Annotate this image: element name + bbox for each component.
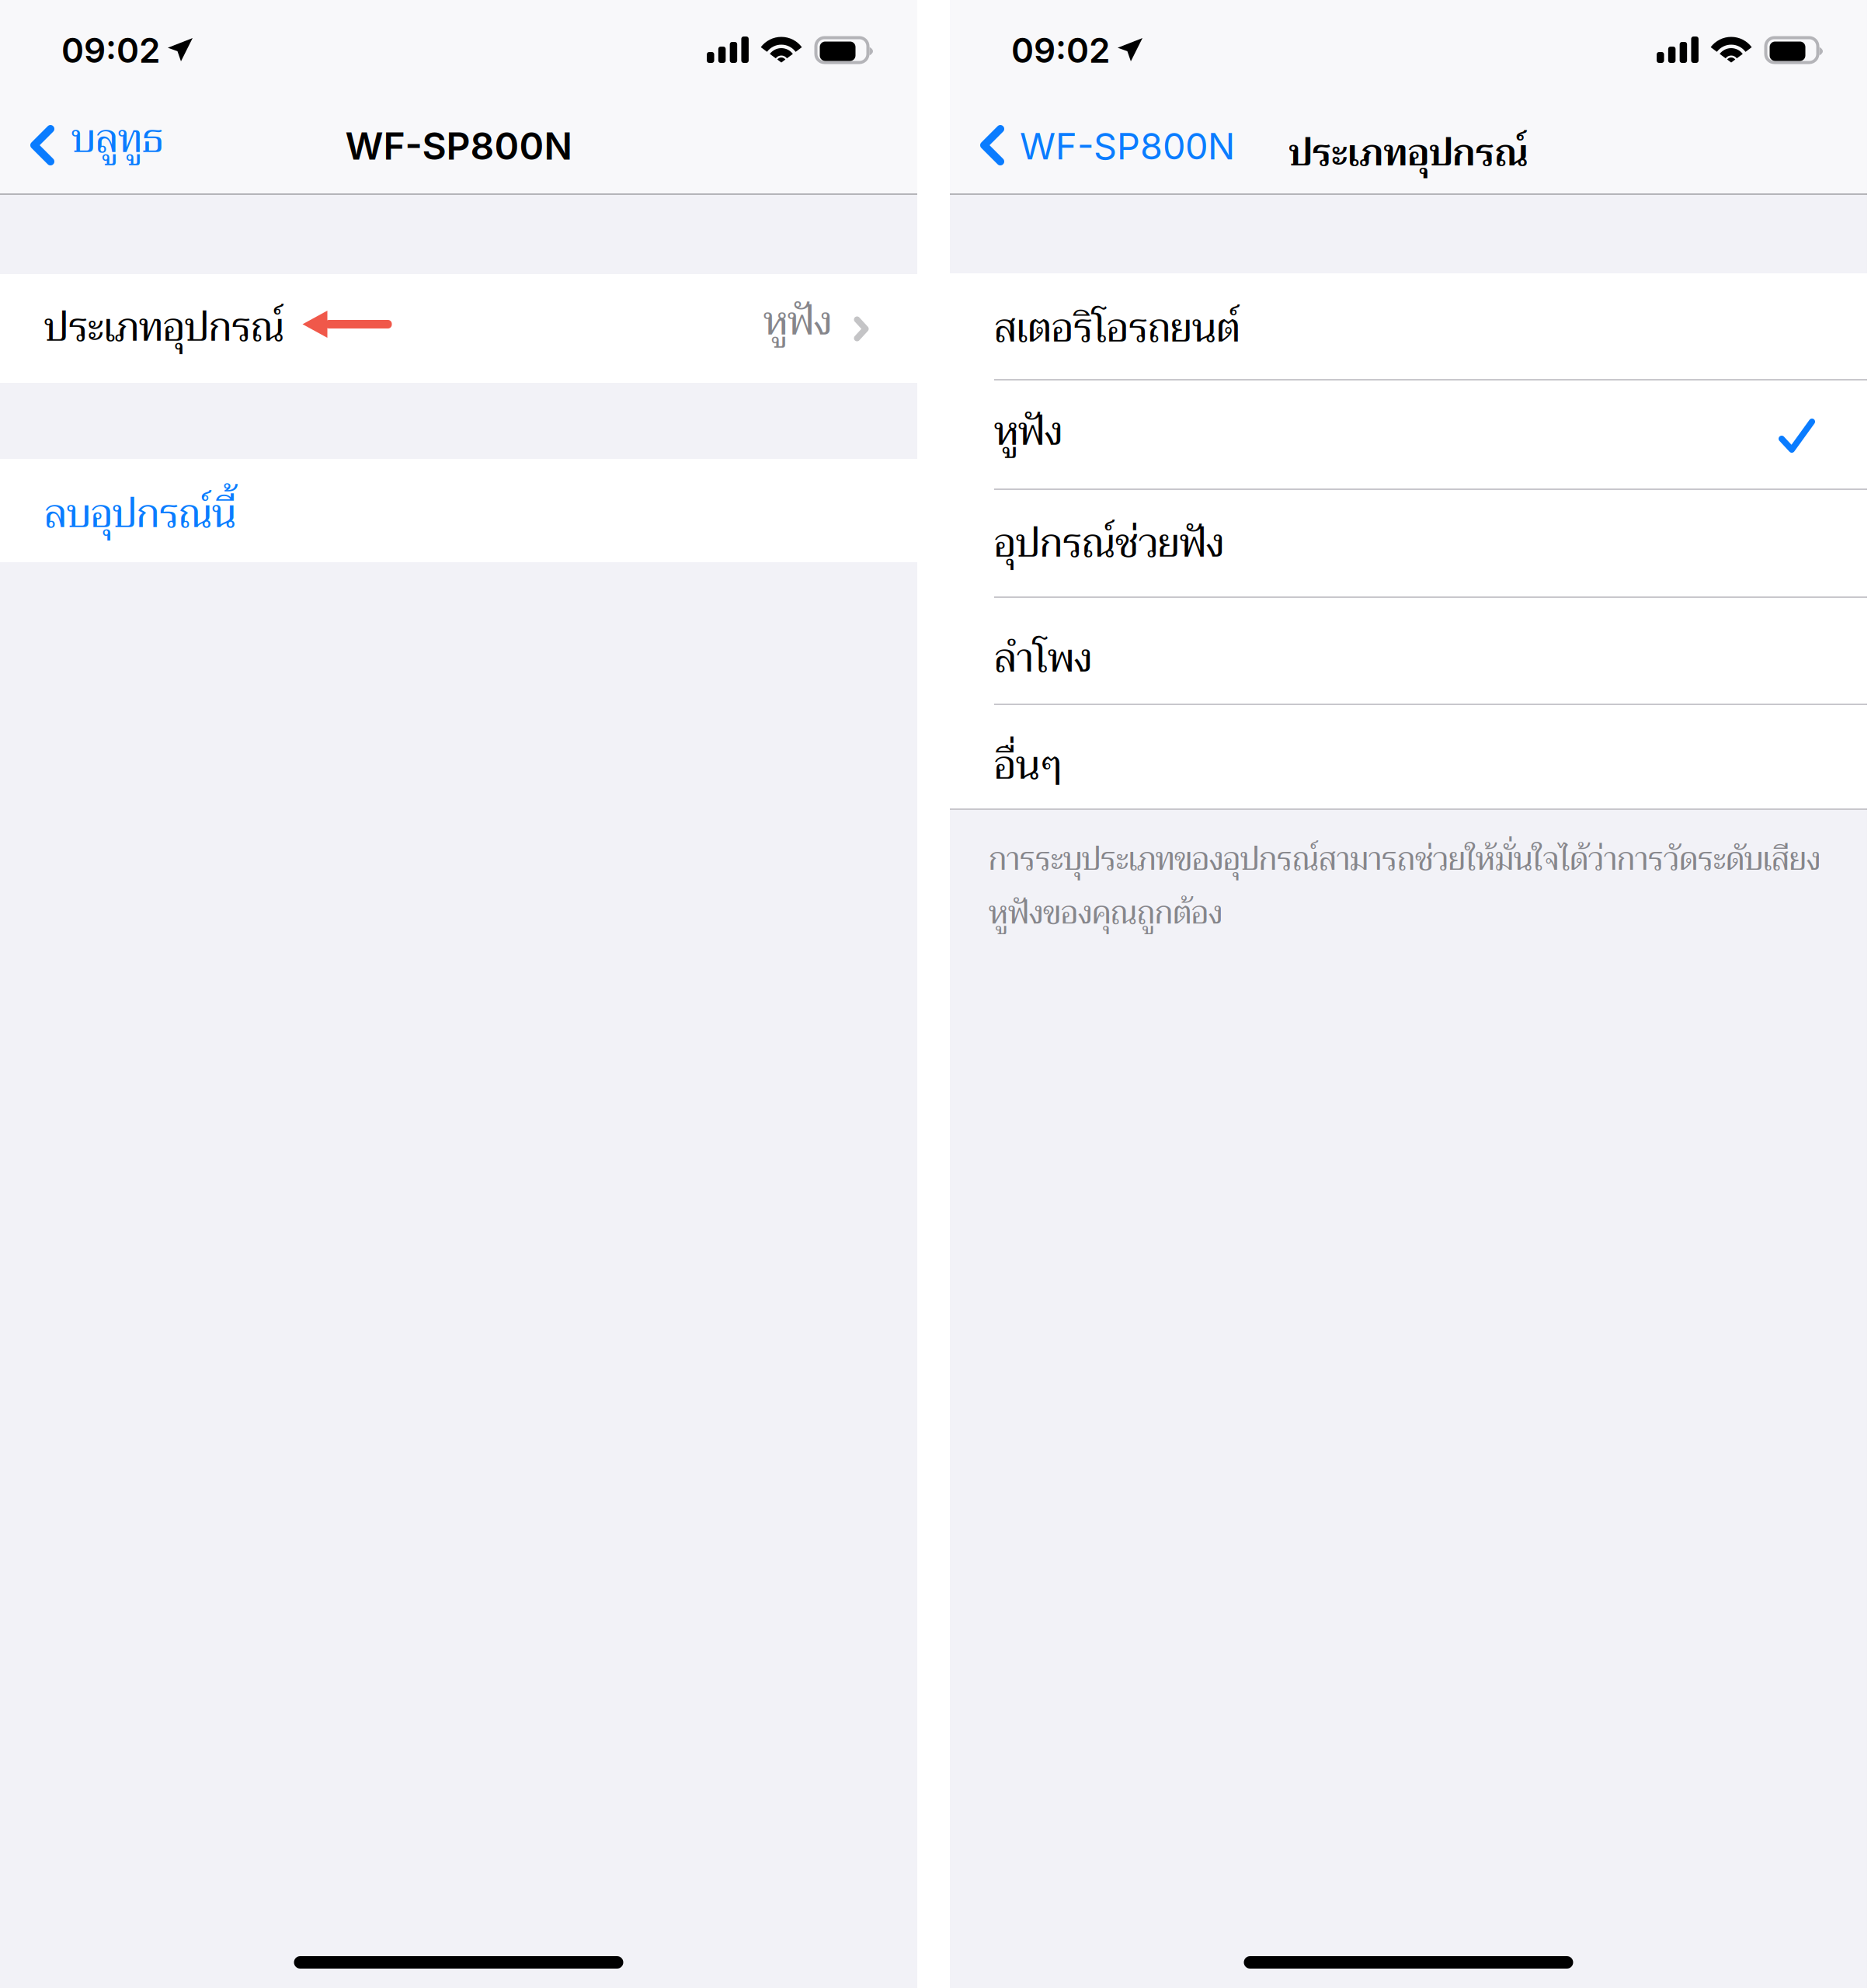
staticText: สเตอริโอรถยนต์ <box>994 294 1240 363</box>
staticText: หูฟัง <box>763 287 832 356</box>
staticText: 09:02 <box>1011 30 1110 71</box>
button[interactable]: ลำโพง <box>950 598 1867 705</box>
staticText: ประเภทอุปกรณ์ <box>1289 121 1528 185</box>
button[interactable]: สเตอริโอรถยนต์ <box>950 273 1867 381</box>
button[interactable]: ประเภทอุปกรณ์ <box>0 274 917 383</box>
staticText: WF-SP800N <box>345 123 572 169</box>
button[interactable]: Back to Bluetooth <box>0 98 328 194</box>
staticText: ลบอุปกรณ์นี้ <box>44 480 236 548</box>
button[interactable]: Back to WF-SP800N <box>950 98 1276 194</box>
button[interactable]: หูฟัง <box>950 381 1867 490</box>
staticText: ลำโพง <box>994 624 1092 693</box>
staticText: บลูทูธ <box>71 105 164 173</box>
staticText: หูฟัง <box>994 398 1062 466</box>
staticText: WF-SP800N <box>1020 124 1235 168</box>
button[interactable]: ลบอุปกรณ์นี้ <box>0 459 917 562</box>
staticText: 09:02 <box>61 30 160 71</box>
staticText: ประเภทอุปกรณ์ <box>44 294 284 362</box>
staticText: อื่นๆ <box>994 732 1063 800</box>
button[interactable]: อื่นๆ <box>950 705 1867 808</box>
staticText: อุปกรณ์ช่วยฟัง <box>994 509 1224 578</box>
button[interactable]: อุปกรณ์ช่วยฟัง <box>950 490 1867 598</box>
staticText: การระบุประเภทของอุปกรณ์สามารถช่วยให้มั่น… <box>989 832 1821 940</box>
